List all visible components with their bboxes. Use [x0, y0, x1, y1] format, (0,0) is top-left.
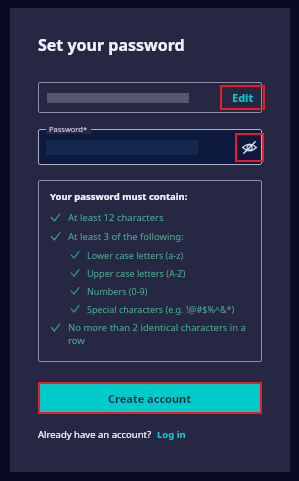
staticText: Already have an account?: [38, 428, 152, 441]
staticText: Log in: [157, 428, 186, 441]
staticText: Numbers (0-9): [87, 285, 148, 297]
staticText: Create account: [108, 391, 192, 406]
button[interactable]: Log in: [157, 428, 186, 441]
staticText: At least 3 of the following:: [68, 230, 184, 243]
staticText: Set your password: [38, 34, 185, 56]
staticText: Upper case letters (A-Z): [87, 267, 186, 279]
button[interactable]: Create account: [40, 384, 260, 412]
staticText: Edit: [232, 90, 254, 105]
staticText: At least 12 characters: [68, 211, 164, 224]
button[interactable]: Show password: [235, 133, 264, 162]
staticText: Lower case letters (a-z): [87, 249, 184, 261]
staticText: No more than 2 identical characters in a…: [68, 321, 254, 347]
staticText: Special characters (e.g. !@#$%^&*): [87, 303, 235, 315]
staticText: Password*: [49, 124, 88, 134]
staticText: Your password must contain:: [50, 190, 188, 203]
button[interactable]: Edit: [220, 85, 265, 110]
